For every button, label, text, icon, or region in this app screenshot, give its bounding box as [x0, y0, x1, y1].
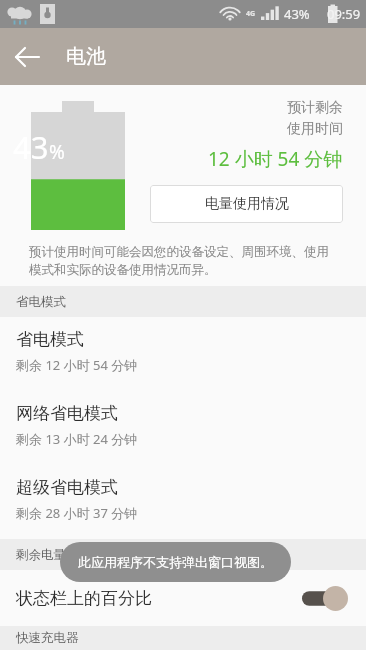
- staticText: 省电模式: [16, 329, 84, 350]
- staticText: 电量使用情况: [205, 195, 289, 213]
- staticText: 剩余电量: [16, 547, 66, 563]
- staticText: 12 小时 54 分钟: [208, 146, 343, 172]
- button[interactable]: Back: [4, 33, 52, 81]
- staticText: 剩余 28 小时 37 分钟: [16, 504, 138, 522]
- staticText: 快速充电器: [16, 630, 79, 646]
- staticText: 使用时间: [287, 120, 343, 138]
- staticText: 此应用程序不支持弹出窗口视图。: [78, 554, 273, 570]
- button[interactable]: 电量使用情况: [150, 185, 343, 223]
- button[interactable]: 网络省电模式: [0, 391, 366, 465]
- staticText: 43%: [284, 5, 310, 23]
- staticText: 超级省电模式: [16, 477, 118, 498]
- staticText: 剩余 12 小时 54 分钟: [16, 356, 138, 374]
- staticText: 网络省电模式: [16, 403, 118, 424]
- button[interactable]: 省电模式: [0, 317, 366, 391]
- staticText: 4G: [246, 9, 256, 19]
- staticText: 43: [13, 126, 49, 168]
- button[interactable]: 超级省电模式: [0, 465, 366, 539]
- staticText: 09:59: [327, 5, 361, 23]
- staticText: 剩余 13 小时 24 分钟: [16, 430, 138, 448]
- staticText: 预计使用时间可能会因您的设备设定、周围环境、使用 模式和实际的设备使用情况而异。: [29, 244, 329, 278]
- staticText: 预计剩余: [287, 99, 343, 117]
- staticText: 省电模式: [16, 294, 66, 310]
- staticText: 状态栏上的百分比: [16, 588, 302, 609]
- staticText: 电池: [66, 44, 106, 69]
- button[interactable]: 状态栏上的百分比: [0, 570, 366, 626]
- staticText: %: [49, 139, 65, 165]
